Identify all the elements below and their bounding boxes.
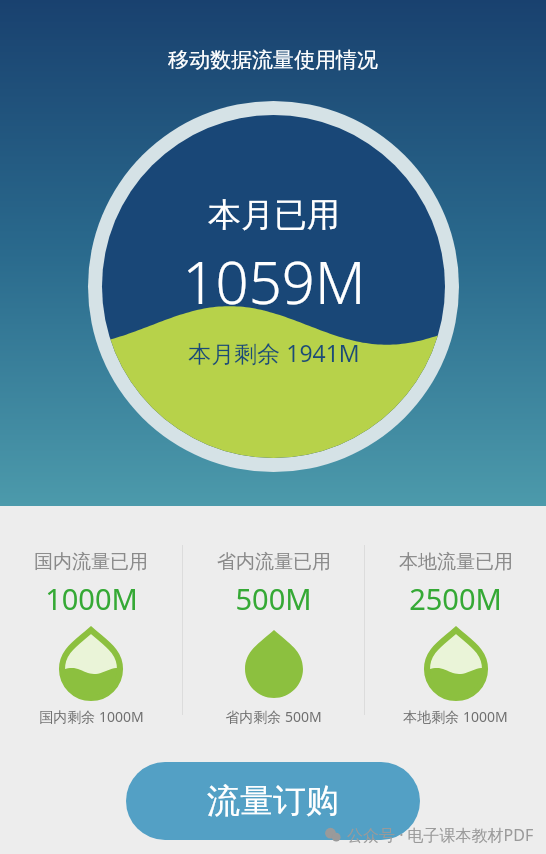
- button[interactable]: 本地流量已用: [365, 506, 546, 746]
- staticText: 1059M: [182, 242, 366, 321]
- staticText: 移动数据流量使用情况: [0, 47, 546, 73]
- staticText: 本地流量已用: [399, 550, 513, 574]
- other: WeChat: [324, 826, 342, 844]
- staticText: 本月已用: [208, 194, 340, 236]
- staticText: 2500M: [409, 579, 502, 618]
- staticText: 本地剩余 1000M: [403, 707, 508, 726]
- staticText: 本月剩余 1941M: [188, 337, 360, 368]
- button[interactable]: 省内流量已用: [183, 506, 364, 746]
- staticText: 国内剩余 1000M: [39, 707, 144, 726]
- button[interactable]: 流量订购: [126, 762, 420, 840]
- button[interactable]: 国内流量已用: [0, 506, 182, 746]
- staticText: 公众号 · 电子课本教材PDF: [347, 824, 534, 846]
- staticText: 国内流量已用: [34, 550, 148, 574]
- staticText: 500M: [235, 579, 312, 618]
- staticText: 1000M: [45, 579, 138, 618]
- staticText: 流量订购: [207, 780, 339, 822]
- staticText: 省内剩余 500M: [225, 707, 322, 726]
- staticText: 省内流量已用: [217, 550, 331, 574]
